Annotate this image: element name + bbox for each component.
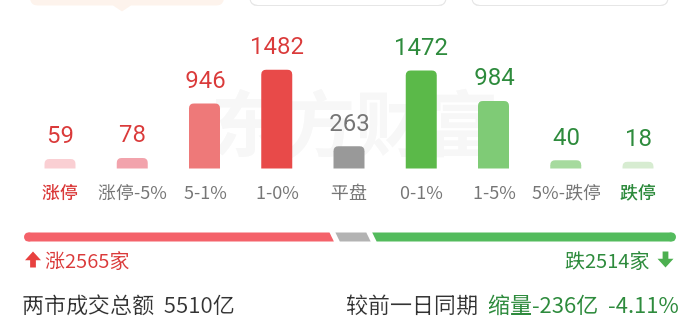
staticText: 涨停: [42, 178, 78, 204]
staticText: 涨2565家: [45, 245, 130, 274]
staticText: 1-0%: [256, 178, 299, 204]
staticText: 59: [47, 121, 74, 149]
staticText: 1472: [394, 33, 448, 61]
staticText: 1482: [250, 32, 304, 60]
staticText: 78: [119, 120, 146, 148]
staticText: 40: [553, 123, 580, 151]
staticText: 两市成交总额 5510亿: [22, 287, 235, 319]
button[interactable]: 0-1%: [376, 178, 466, 204]
staticText: 跌停: [620, 178, 656, 204]
staticText: 5%-跌停: [532, 178, 601, 204]
button[interactable]: 平盘: [304, 178, 394, 204]
button[interactable]: 1-5%: [449, 178, 539, 204]
staticText: 263: [329, 109, 370, 137]
button[interactable]: 1-0%: [232, 178, 322, 204]
button[interactable]: 涨停: [15, 178, 105, 204]
staticText: 东方财富: [211, 67, 500, 171]
button[interactable]: 跌停: [593, 178, 683, 204]
staticText: 跌2514家: [565, 245, 650, 274]
staticText: 18: [625, 124, 652, 152]
staticText: 涨停-5%: [98, 178, 167, 204]
staticText: 5-1%: [184, 178, 227, 204]
button[interactable]: 5-1%: [160, 178, 250, 204]
button[interactable]: 5%-跌停: [521, 178, 611, 204]
staticText: 1-5%: [473, 178, 516, 204]
staticText: 缩量-236亿 -4.11%: [483, 287, 679, 319]
staticText: 984: [474, 63, 515, 91]
staticText: 946: [185, 66, 226, 94]
staticText: 平盘: [331, 178, 367, 204]
staticText: 较前一日同期: [346, 287, 483, 319]
staticText: 0-1%: [400, 178, 443, 204]
button[interactable]: 涨停-5%: [87, 178, 177, 204]
